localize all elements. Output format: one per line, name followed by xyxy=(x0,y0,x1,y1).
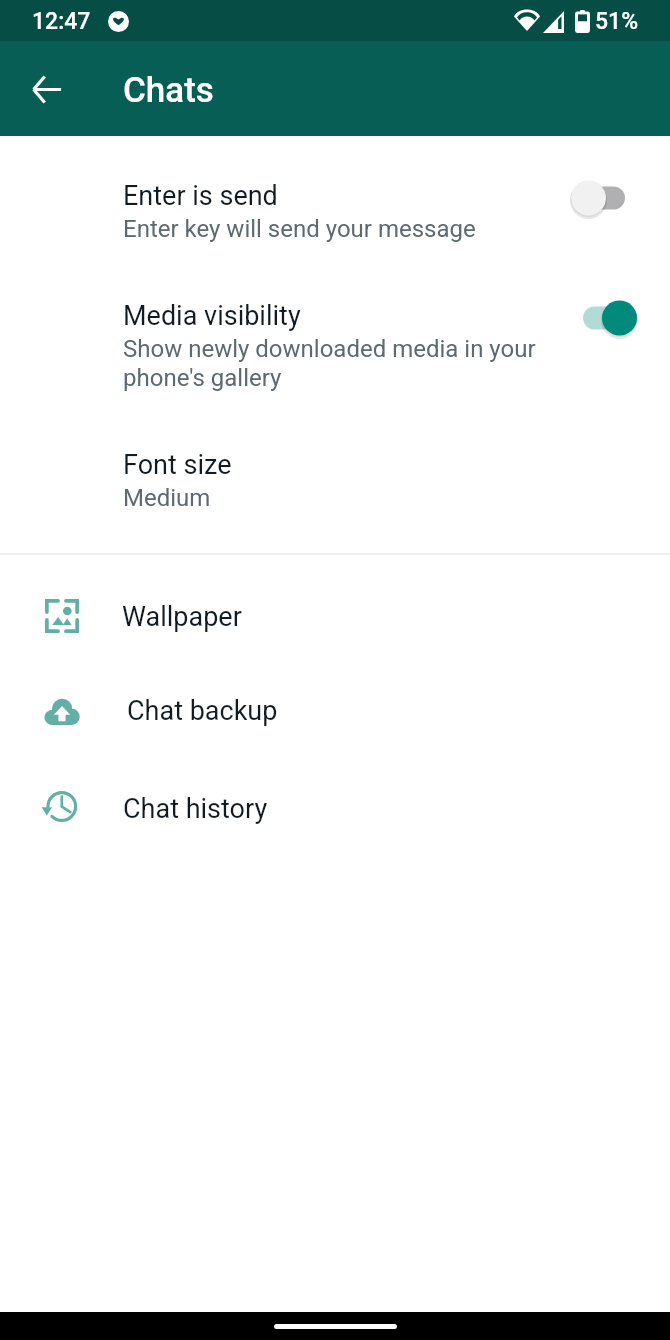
button[interactable]: Chat history xyxy=(0,760,670,856)
button[interactable]: Chat backup xyxy=(0,662,670,758)
button[interactable]: On xyxy=(569,298,639,338)
button[interactable]: Wallpaper xyxy=(0,568,670,664)
staticText: Enter key will send your message xyxy=(123,215,476,243)
staticText: Medium xyxy=(123,484,211,512)
button[interactable]: Off xyxy=(569,178,639,218)
button[interactable]: Back xyxy=(19,61,75,117)
staticText: 51% xyxy=(595,8,639,35)
staticText: Enter is send xyxy=(123,180,278,212)
staticText: Font size xyxy=(123,449,232,481)
staticText: Chat backup xyxy=(127,695,278,727)
staticText: Chat history xyxy=(123,793,268,825)
button[interactable]: Media visibility xyxy=(0,256,670,381)
button[interactable]: Home xyxy=(274,1324,397,1329)
button[interactable]: Font size xyxy=(0,405,670,501)
staticText: Show newly downloaded media in your phon… xyxy=(123,335,566,392)
button[interactable]: Enter is send xyxy=(0,136,670,232)
staticText: Media visibility xyxy=(123,300,301,332)
staticText: Wallpaper xyxy=(122,601,242,633)
staticText: Chats xyxy=(123,70,214,111)
staticText: 12:47 xyxy=(32,8,91,35)
